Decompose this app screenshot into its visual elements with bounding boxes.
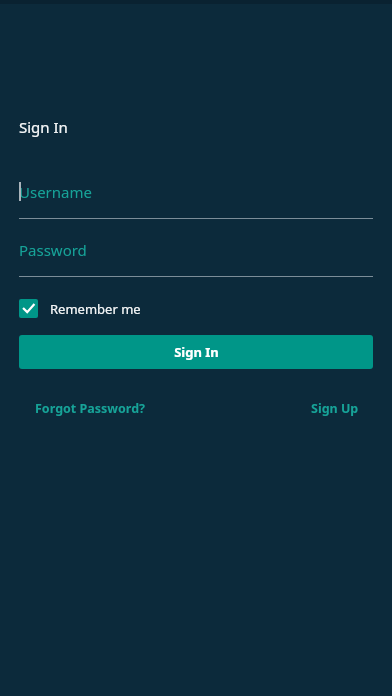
button[interactable]: Remember me xyxy=(19,299,141,318)
staticText: Sign Up xyxy=(311,400,359,417)
staticText: Remember me xyxy=(50,300,141,318)
button[interactable]: Forgot Password? xyxy=(35,400,146,417)
staticText: Password xyxy=(19,240,87,260)
staticText: Username xyxy=(19,182,92,202)
button[interactable]: Sign In xyxy=(19,335,373,369)
staticText: Sign In xyxy=(19,117,68,137)
staticText: Sign In xyxy=(174,343,219,361)
staticText: Forgot Password? xyxy=(35,400,146,417)
button[interactable]: Password xyxy=(19,239,373,277)
button[interactable]: Sign Up xyxy=(311,400,359,417)
button[interactable]: Username xyxy=(19,181,373,219)
